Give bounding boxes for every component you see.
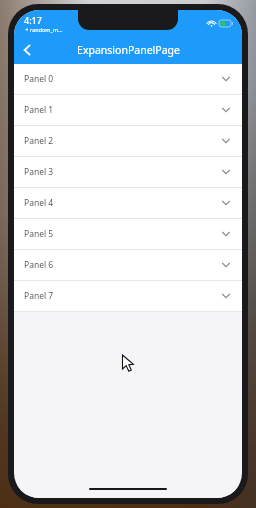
staticText: ExpansionPanelPage <box>77 43 180 57</box>
button[interactable]: Panel 7 <box>14 281 242 311</box>
staticText: Panel 5 <box>24 228 54 240</box>
button[interactable]: Panel 3 <box>14 157 242 187</box>
staticText: Panel 2 <box>24 135 54 147</box>
staticText: Panel 0 <box>24 73 54 85</box>
staticText: Panel 6 <box>24 259 54 271</box>
button[interactable]: Panel 1 <box>14 95 242 125</box>
button[interactable]: Panel 5 <box>14 219 242 249</box>
button[interactable]: Panel 4 <box>14 188 242 218</box>
staticText: Panel 7 <box>24 290 54 302</box>
button[interactable]: Back <box>14 37 40 63</box>
button[interactable]: Panel 0 <box>14 64 242 94</box>
staticText: Panel 1 <box>24 104 54 116</box>
staticText: random_m... <box>30 26 63 33</box>
staticText: Panel 3 <box>24 166 54 178</box>
button[interactable]: Panel 6 <box>14 250 242 280</box>
staticText: 4:17 <box>24 14 42 26</box>
button[interactable]: Panel 2 <box>14 126 242 156</box>
staticText: Panel 4 <box>24 197 54 209</box>
